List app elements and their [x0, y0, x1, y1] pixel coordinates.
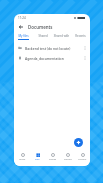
button[interactable]: Account — [75, 150, 90, 166]
button[interactable]: More options — [82, 45, 88, 51]
button[interactable]: More options — [82, 55, 88, 61]
button[interactable]: Recents — [71, 32, 90, 40]
button[interactable]: Back — [17, 23, 25, 31]
button[interactable]: Shared — [45, 150, 60, 166]
button[interactable]: My files — [14, 32, 33, 40]
button[interactable]: Shared with me — [52, 32, 71, 40]
staticText: Backend test (do not locate) — [25, 46, 71, 51]
staticText: Agenda_documentation — [25, 56, 64, 61]
staticText: Documents — [28, 24, 53, 30]
button[interactable]: Files — [30, 150, 45, 166]
staticText: Files — [35, 158, 40, 161]
staticText: 11:24 — [18, 16, 26, 20]
staticText: Home — [19, 158, 26, 161]
button[interactable]: Shared — [33, 32, 52, 40]
button[interactable]: Agenda_documentation — [14, 53, 90, 63]
staticText: Recents — [75, 34, 86, 38]
staticText: Shared — [38, 34, 48, 38]
staticText: My files — [18, 34, 29, 38]
staticText: Starred — [64, 158, 72, 161]
staticText: Shared — [49, 158, 57, 161]
button[interactable]: Backend test (do not locate) — [14, 43, 90, 53]
button[interactable]: Starred — [60, 150, 75, 166]
button[interactable]: Add — [74, 138, 83, 147]
staticText: Shared with me — [52, 34, 71, 38]
staticText: Account — [78, 158, 87, 161]
button[interactable]: Home — [14, 150, 30, 166]
